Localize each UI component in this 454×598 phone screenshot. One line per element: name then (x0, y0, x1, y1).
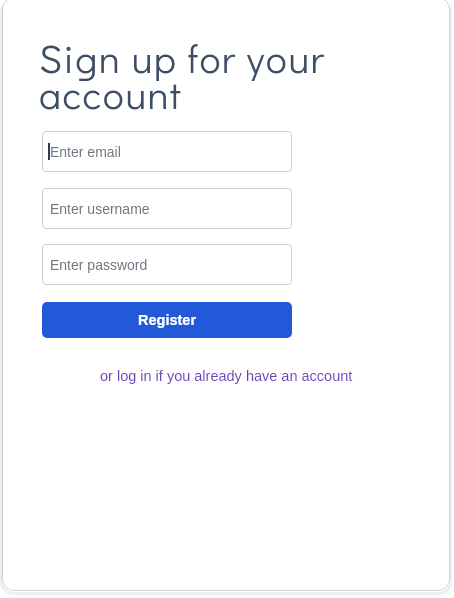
button[interactable]: Enter password (42, 244, 292, 285)
button[interactable]: Enter email (42, 131, 292, 172)
staticText: Sign up for your (39, 32, 326, 84)
staticText: Enter email (50, 144, 121, 160)
button[interactable]: Register (42, 302, 292, 338)
button[interactable]: Enter username (42, 188, 292, 229)
staticText: Register (138, 312, 197, 328)
staticText: account (39, 68, 183, 120)
button[interactable]: or log in if you already have an account (100, 368, 353, 384)
staticText: Enter password (50, 257, 148, 273)
staticText: Enter username (50, 201, 150, 217)
